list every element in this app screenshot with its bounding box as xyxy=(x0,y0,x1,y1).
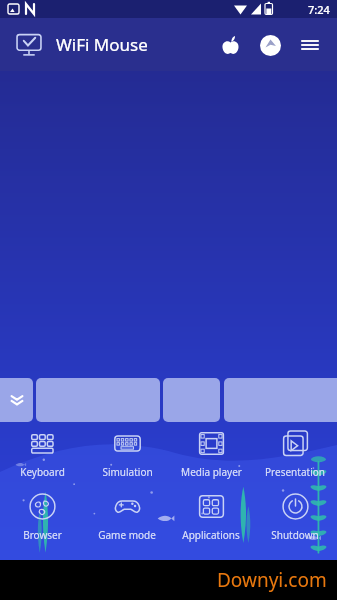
button[interactable]: Keyboard xyxy=(0,430,85,479)
staticText: Browser xyxy=(23,528,62,542)
button[interactable]: Media player xyxy=(169,430,253,479)
staticText: Downyi.com xyxy=(217,567,327,593)
button[interactable]: Mac xyxy=(213,28,247,62)
staticText: WiFi Mouse xyxy=(56,33,148,56)
staticText: Media player xyxy=(181,465,242,479)
button[interactable]: Expand xyxy=(0,378,33,422)
button[interactable]: Connected device xyxy=(14,30,44,60)
staticText: Keyboard xyxy=(20,465,65,479)
button[interactable]: Game mode xyxy=(85,493,169,542)
button[interactable]: Applications xyxy=(169,493,253,542)
staticText: 7:24 xyxy=(308,2,330,17)
button[interactable]: Simulation xyxy=(85,430,169,479)
staticText: Game mode xyxy=(98,528,156,542)
button[interactable]: Windows xyxy=(253,28,287,62)
staticText: Presentation xyxy=(265,465,325,479)
staticText: Applications xyxy=(182,528,240,542)
button[interactable]: Menu xyxy=(291,26,329,64)
button[interactable]: Right button xyxy=(224,378,337,422)
staticText: Shutdown xyxy=(271,528,319,542)
button[interactable]: Browser xyxy=(0,493,85,542)
button[interactable]: Left button xyxy=(36,378,160,422)
button[interactable]: Presentation xyxy=(253,430,337,479)
staticText: Simulation xyxy=(102,465,153,479)
button[interactable]: Shutdown xyxy=(253,493,337,542)
button[interactable]: Middle button xyxy=(163,378,220,422)
